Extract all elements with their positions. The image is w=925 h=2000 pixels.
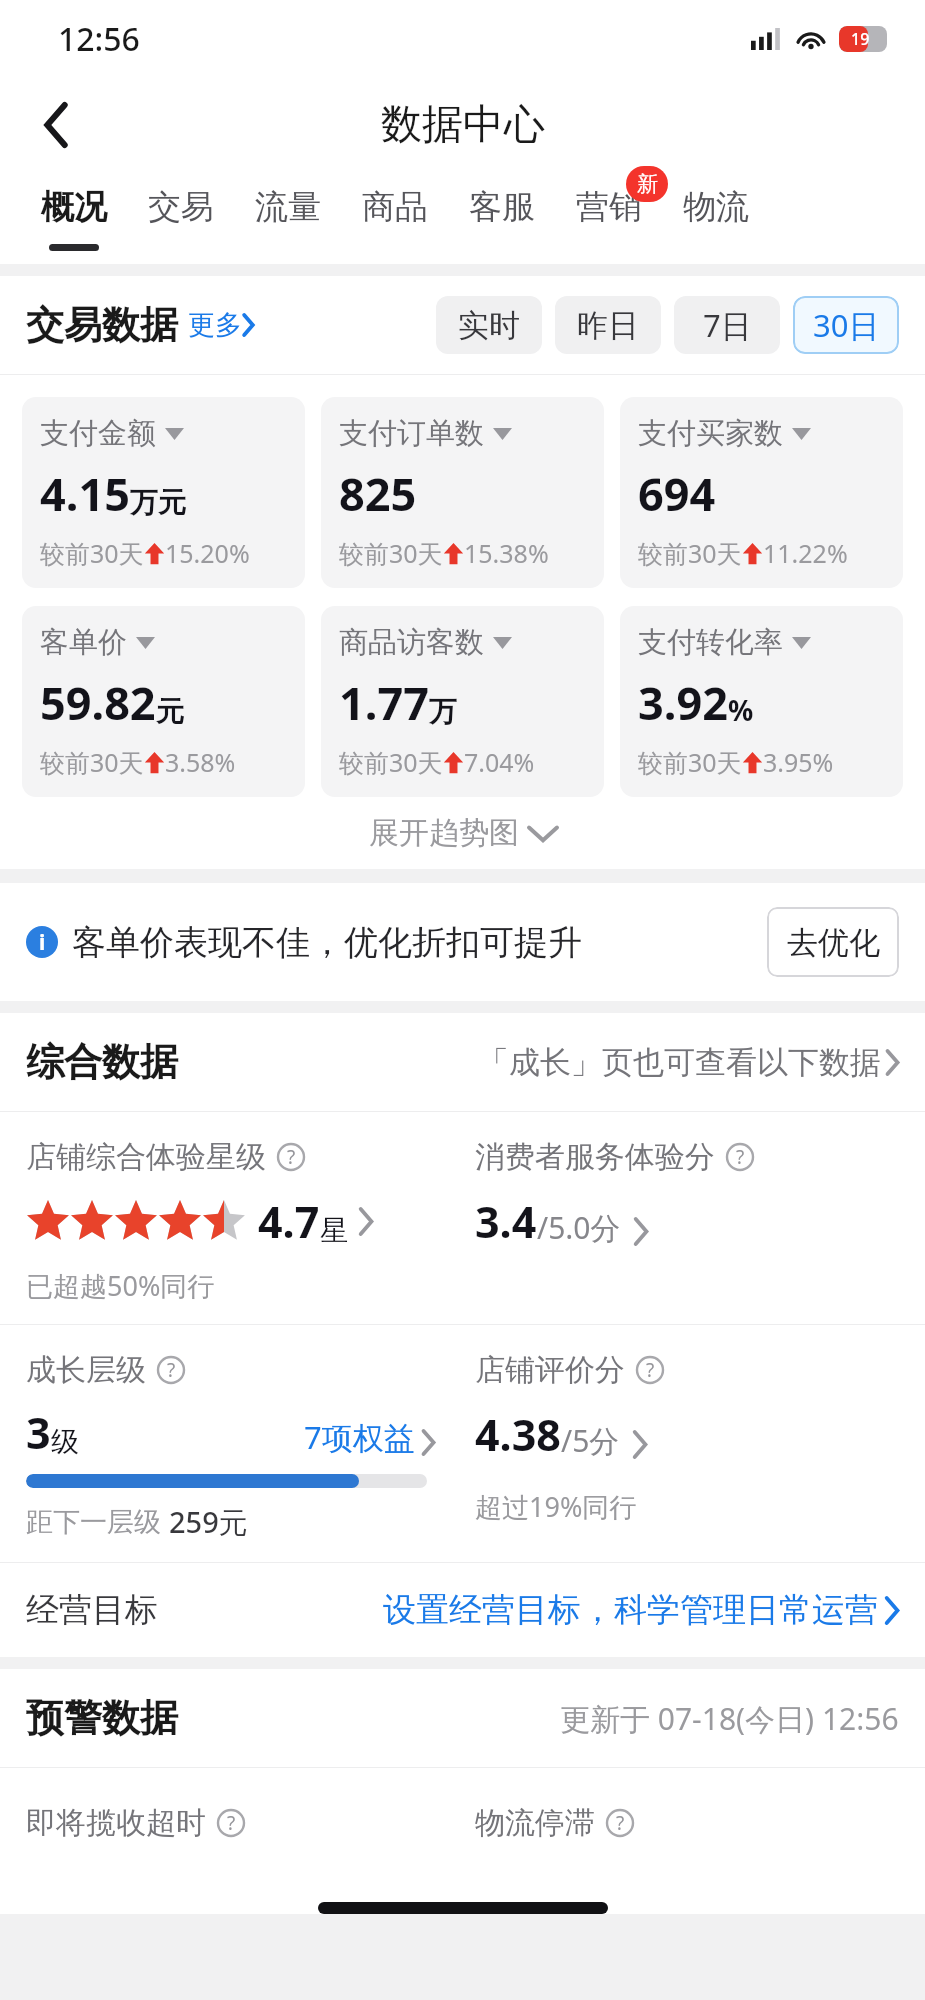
staticText: 支付金额 bbox=[40, 415, 156, 452]
staticText: 11.22% bbox=[763, 536, 848, 570]
staticText: ? bbox=[646, 1357, 655, 1383]
button[interactable]: Help bbox=[635, 1355, 665, 1385]
staticText: 综合数据 bbox=[26, 1038, 178, 1086]
staticText: 较前30天 bbox=[339, 745, 443, 779]
staticText: 交易数据 bbox=[26, 301, 178, 349]
staticText: 7日 bbox=[703, 304, 752, 346]
staticText: % bbox=[728, 691, 754, 729]
button[interactable]: 物流 bbox=[662, 172, 769, 264]
button[interactable]: 支付买家数 bbox=[620, 397, 903, 588]
staticText: 消费者服务体验分 bbox=[475, 1138, 715, 1176]
staticText: 259元 bbox=[169, 1502, 248, 1542]
staticText: 物流 bbox=[683, 186, 749, 228]
staticText: 店铺评价分 bbox=[475, 1351, 625, 1389]
staticText: 59.82 bbox=[40, 672, 156, 733]
staticText: 支付转化率 bbox=[638, 624, 783, 661]
staticText: 30日 bbox=[813, 304, 880, 346]
button[interactable]: Help bbox=[156, 1355, 186, 1385]
staticText: i bbox=[39, 928, 46, 957]
staticText: 较前30天 bbox=[638, 745, 742, 779]
staticText: 更多 bbox=[188, 308, 242, 342]
staticText: 商品 bbox=[362, 186, 428, 228]
staticText: 已超越50%同行 bbox=[26, 1267, 215, 1304]
staticText: 1.77 bbox=[339, 672, 429, 733]
staticText: 694 bbox=[638, 463, 716, 524]
button[interactable]: Help bbox=[216, 1808, 246, 1838]
button[interactable]: 经营目标 bbox=[26, 1563, 899, 1657]
staticText: ? bbox=[227, 1810, 236, 1836]
staticText: 店铺综合体验星级 bbox=[26, 1138, 266, 1176]
button[interactable]: 交易 bbox=[127, 172, 234, 264]
staticText: 4.15 bbox=[40, 463, 130, 524]
staticText: 客单价表现不佳，优化折扣可提升 bbox=[72, 921, 582, 964]
staticText: 流量 bbox=[255, 186, 321, 228]
button[interactable]: 更多 bbox=[188, 308, 254, 342]
staticText: 较前30天 bbox=[40, 745, 144, 779]
button[interactable]: 概况 bbox=[20, 172, 127, 264]
staticText: 支付订单数 bbox=[339, 415, 484, 452]
staticText: 「成长」页也可查看以下数据 bbox=[478, 1043, 881, 1082]
staticText: 19 bbox=[851, 28, 870, 50]
staticText: 较前30天 bbox=[638, 536, 742, 570]
button[interactable]: 7日 bbox=[674, 296, 780, 354]
staticText: 物流停滞 bbox=[475, 1804, 595, 1842]
button[interactable]: 营销 bbox=[555, 172, 662, 264]
button[interactable]: 支付金额 bbox=[22, 397, 305, 588]
staticText: 3.58% bbox=[165, 745, 236, 779]
button[interactable]: 实时 bbox=[436, 296, 542, 354]
staticText: 3.92 bbox=[638, 672, 728, 733]
button[interactable]: Help bbox=[725, 1142, 755, 1172]
staticText: 成长层级 bbox=[26, 1351, 146, 1389]
staticText: 超过19%同行 bbox=[475, 1488, 637, 1525]
staticText: 12:56 bbox=[58, 17, 140, 61]
button[interactable]: 支付转化率 bbox=[620, 606, 903, 797]
button[interactable]: 「成长」页也可查看以下数据 bbox=[478, 1043, 899, 1082]
staticText: /5.0分 bbox=[537, 1207, 621, 1248]
button[interactable]: 支付订单数 bbox=[321, 397, 604, 588]
staticText: 825 bbox=[339, 463, 417, 524]
staticText: 7.04% bbox=[464, 745, 535, 779]
staticText: 客服 bbox=[469, 186, 535, 228]
button[interactable]: 流量 bbox=[234, 172, 341, 264]
button[interactable]: 商品 bbox=[341, 172, 448, 264]
staticText: 3.4 bbox=[475, 1192, 537, 1251]
staticText: 万 bbox=[429, 694, 457, 729]
staticText: 即将揽收超时 bbox=[26, 1804, 206, 1842]
staticText: 元 bbox=[156, 694, 184, 729]
staticText: 昨日 bbox=[577, 306, 639, 345]
button[interactable]: 客单价 bbox=[22, 606, 305, 797]
staticText: 支付买家数 bbox=[638, 415, 783, 452]
staticText: 4.38 bbox=[475, 1405, 561, 1464]
staticText: 经营目标 bbox=[26, 1589, 158, 1631]
button[interactable]: 3.4 bbox=[475, 1192, 648, 1251]
staticText: 3 bbox=[26, 1403, 51, 1462]
staticText: 级 bbox=[51, 1424, 79, 1459]
staticText: 15.38% bbox=[464, 536, 549, 570]
button[interactable]: 展开趋势图 bbox=[0, 797, 925, 869]
button[interactable]: 去优化 bbox=[767, 907, 899, 977]
staticText: 更新于 07-18(今日) 12:56 bbox=[560, 1698, 899, 1739]
button[interactable]: Help bbox=[276, 1142, 306, 1172]
staticText: ? bbox=[736, 1144, 745, 1170]
staticText: 预警数据 bbox=[26, 1694, 178, 1742]
staticText: 较前30天 bbox=[339, 536, 443, 570]
button[interactable]: 4.38 bbox=[475, 1405, 647, 1464]
button[interactable]: 客服 bbox=[448, 172, 555, 264]
button[interactable]: Help bbox=[605, 1808, 635, 1838]
staticText: 概况 bbox=[41, 186, 107, 228]
button[interactable]: 3 bbox=[26, 1403, 435, 1462]
staticText: 商品访客数 bbox=[339, 624, 484, 661]
staticText: ? bbox=[616, 1810, 625, 1836]
staticText: 较前30天 bbox=[40, 536, 144, 570]
staticText: 距下一层级 bbox=[26, 1505, 161, 1539]
button[interactable]: 商品访客数 bbox=[321, 606, 604, 797]
staticText: 营销 bbox=[576, 186, 642, 228]
button[interactable]: 4.7 bbox=[26, 1192, 373, 1251]
staticText: 3.95% bbox=[763, 745, 834, 779]
button[interactable]: Back bbox=[28, 96, 86, 154]
staticText: ? bbox=[287, 1144, 296, 1170]
button[interactable]: 昨日 bbox=[555, 296, 661, 354]
button[interactable]: 30日 bbox=[793, 296, 899, 354]
staticText: 展开趋势图 bbox=[369, 814, 519, 852]
staticText: 设置经营目标，科学管理日常运营 bbox=[383, 1589, 878, 1631]
